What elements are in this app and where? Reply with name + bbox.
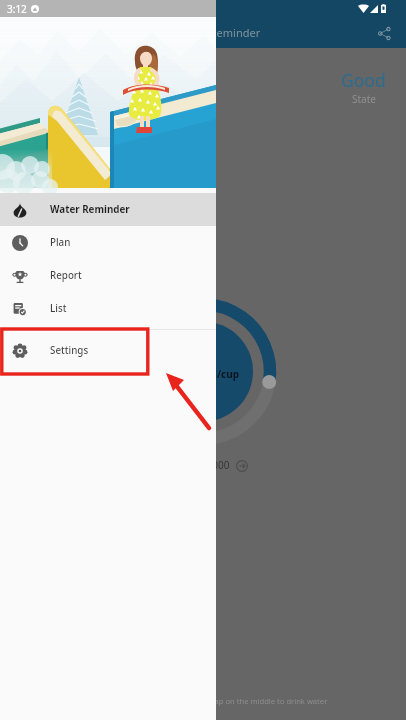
staticText: 3:12 — [7, 2, 27, 16]
staticText: Water Reminder — [176, 25, 261, 40]
button[interactable]: Share — [370, 19, 398, 47]
staticText: Report — [50, 269, 82, 282]
staticText: Water Reminder — [50, 203, 130, 216]
staticText: 1200/2000 — [180, 458, 230, 472]
staticText: Settings — [50, 344, 89, 357]
button[interactable]: Plan — [0, 226, 216, 259]
button[interactable]: Report — [0, 259, 216, 292]
button[interactable]: Settings — [0, 334, 216, 367]
staticText: List — [50, 302, 67, 315]
button[interactable]: List — [0, 292, 216, 325]
staticText: 200ml/cup — [187, 367, 240, 381]
staticText: State — [352, 92, 376, 106]
button[interactable]: Next — [235, 459, 248, 472]
button[interactable]: Water Reminder — [0, 193, 216, 226]
staticText: Tap on the middle to drink water — [211, 696, 328, 706]
staticText: Plan — [50, 236, 71, 249]
staticText: Good — [341, 68, 386, 92]
